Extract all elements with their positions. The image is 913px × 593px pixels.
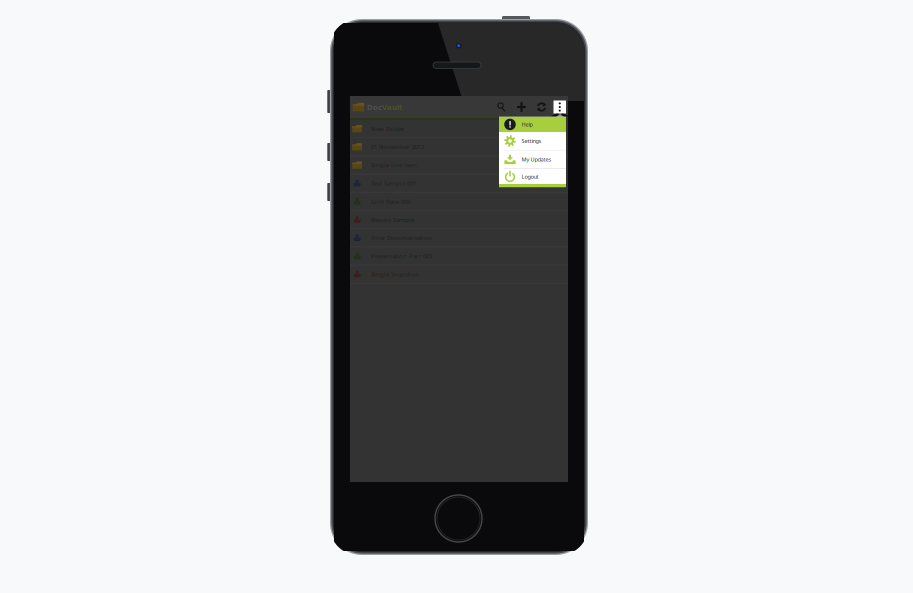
button[interactable]: More options	[553, 96, 566, 118]
staticText: Vault	[382, 102, 402, 112]
staticText: Help	[521, 121, 532, 128]
staticText: 01 November 2013	[371, 143, 424, 151]
button[interactable]: Settings	[499, 132, 566, 151]
button[interactable]: Test Sample 001	[350, 174, 568, 193]
button[interactable]: Help	[499, 117, 566, 132]
button[interactable]: Logout	[499, 169, 566, 184]
button[interactable]: Search	[491, 96, 511, 118]
staticText: Final Documentation	[371, 234, 432, 242]
staticText: Test Sample 001	[371, 179, 416, 187]
staticText: New Folder	[371, 124, 405, 133]
staticText: Grid Base 002	[371, 197, 410, 205]
button[interactable]: 01 November 2013	[350, 138, 568, 156]
staticText: Logout	[521, 173, 538, 180]
button[interactable]: Refresh	[531, 96, 551, 118]
staticText: Settings	[521, 137, 541, 145]
button[interactable]: New Folder	[350, 120, 568, 138]
staticText: Doc	[367, 102, 382, 112]
button[interactable]: Single line item	[350, 156, 568, 174]
staticText: Report Sample	[371, 215, 414, 224]
button[interactable]: New	[511, 96, 531, 118]
staticText: My Updates	[521, 156, 551, 163]
staticText: Single line item	[371, 161, 417, 169]
staticText: Single Snapshot	[371, 270, 418, 278]
button[interactable]: My Updates	[499, 151, 566, 169]
staticText: Presentation Part 003	[371, 252, 432, 260]
